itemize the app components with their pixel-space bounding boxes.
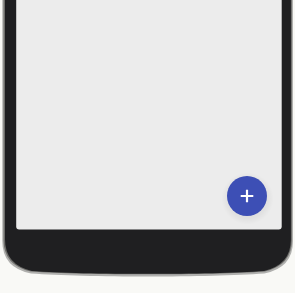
button[interactable]: [227, 176, 267, 216]
